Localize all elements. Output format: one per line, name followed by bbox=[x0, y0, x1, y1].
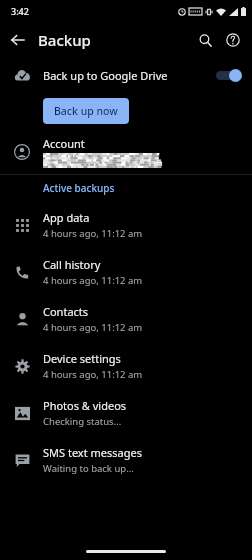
staticText: SMS text messages bbox=[43, 445, 142, 460]
button[interactable]: Back up to Google Drive bbox=[0, 58, 252, 92]
staticText: Back up to Google Drive bbox=[43, 68, 214, 83]
staticText: Contacts bbox=[43, 304, 89, 319]
staticText: Back up now bbox=[54, 104, 118, 118]
staticText: Active backups bbox=[43, 181, 115, 195]
staticText: 4 hours ago, 11:12 am bbox=[43, 274, 143, 287]
button[interactable]: Search bbox=[191, 26, 219, 54]
staticText: Device settings bbox=[43, 351, 121, 366]
button[interactable]: Photos & videos bbox=[0, 389, 252, 436]
staticText: 3:42 bbox=[11, 5, 29, 17]
button[interactable]: Contacts bbox=[0, 295, 252, 342]
staticText: 4 hours ago, 11:12 am bbox=[43, 368, 143, 381]
button[interactable]: Call history bbox=[0, 248, 252, 295]
staticText: App data bbox=[43, 210, 90, 225]
staticText: Call history bbox=[43, 257, 101, 272]
staticText: 4 hours ago, 11:12 am bbox=[43, 227, 143, 240]
staticText: Checking status... bbox=[43, 415, 122, 428]
button[interactable]: Account bbox=[0, 130, 252, 174]
button[interactable]: Help bbox=[219, 26, 247, 54]
staticText: Photos & videos bbox=[43, 398, 127, 413]
button[interactable]: Device settings bbox=[0, 342, 252, 389]
button[interactable]: Back up now bbox=[43, 98, 129, 124]
staticText: Backup bbox=[38, 30, 91, 50]
staticText: Account bbox=[43, 136, 85, 151]
button[interactable]: SMS text messages bbox=[0, 436, 252, 483]
staticText: Waiting to back up... bbox=[43, 462, 134, 475]
button[interactable]: Back bbox=[5, 27, 31, 53]
button[interactable]: Back up to Google Drive toggle bbox=[214, 67, 242, 83]
button[interactable]: App data bbox=[0, 201, 252, 248]
staticText: 4 hours ago, 11:12 am bbox=[43, 321, 143, 334]
